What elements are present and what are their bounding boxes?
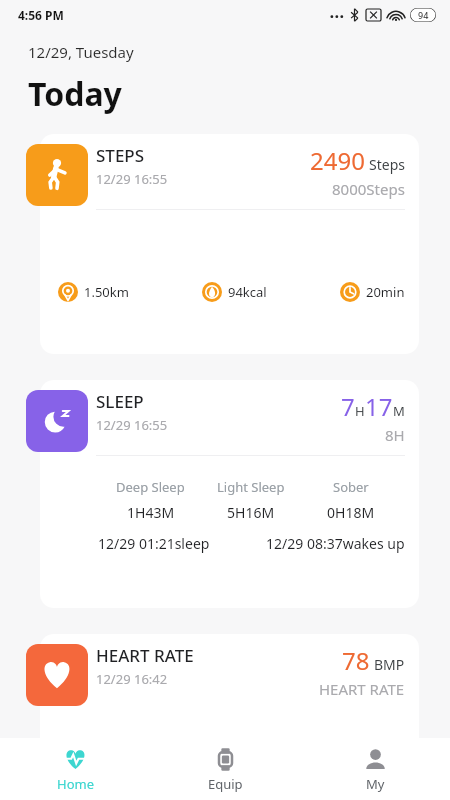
staticText: Home <box>57 775 94 793</box>
staticText: Light Sleep <box>217 478 285 496</box>
staticText: 20min <box>366 283 405 301</box>
staticText: 12/29 08:37wakes up <box>266 534 405 553</box>
button[interactable] <box>40 634 419 764</box>
staticText: HEART RATE <box>96 644 194 667</box>
staticText: 12/29 16:55 <box>96 170 168 188</box>
button[interactable] <box>40 134 419 354</box>
staticText: 5H16M <box>227 503 275 522</box>
staticText: Sober <box>333 478 369 496</box>
button[interactable] <box>40 380 419 608</box>
staticText: 1.50km <box>84 283 129 301</box>
staticText: 7 <box>341 390 355 423</box>
staticText: 94kcal <box>228 283 267 301</box>
staticText: M <box>393 402 405 420</box>
staticText: 8000Steps <box>332 179 405 199</box>
button[interactable]: Equip <box>150 738 300 800</box>
staticText: 12/29 16:55 <box>96 416 168 434</box>
button[interactable]: My <box>300 738 450 800</box>
staticText: 94 <box>418 9 429 21</box>
staticText: 1H43M <box>127 503 175 522</box>
button[interactable]: Home <box>0 738 150 800</box>
staticText: 4:56 PM <box>18 7 64 23</box>
staticText: BMP <box>374 655 405 674</box>
staticText: Equip <box>208 775 243 793</box>
staticText: Today <box>28 72 122 116</box>
staticText: HEART RATE <box>319 679 405 699</box>
staticText: 12/29 16:42 <box>96 670 168 688</box>
staticText: 0H18M <box>327 503 375 522</box>
staticText: SLEEP <box>96 390 144 413</box>
staticText: 12/29, Tuesday <box>28 42 134 62</box>
staticText: 12/29 01:21sleep <box>98 534 210 553</box>
staticText: My <box>366 775 385 793</box>
staticText: STEPS <box>96 144 145 167</box>
staticText: 78 <box>342 644 370 677</box>
staticText: 8H <box>385 425 405 445</box>
staticText: 2490 <box>310 144 365 177</box>
staticText: 17 <box>365 390 393 423</box>
staticText: Steps <box>369 155 405 174</box>
staticText: H <box>355 402 365 420</box>
staticText: Deep Sleep <box>116 478 185 496</box>
